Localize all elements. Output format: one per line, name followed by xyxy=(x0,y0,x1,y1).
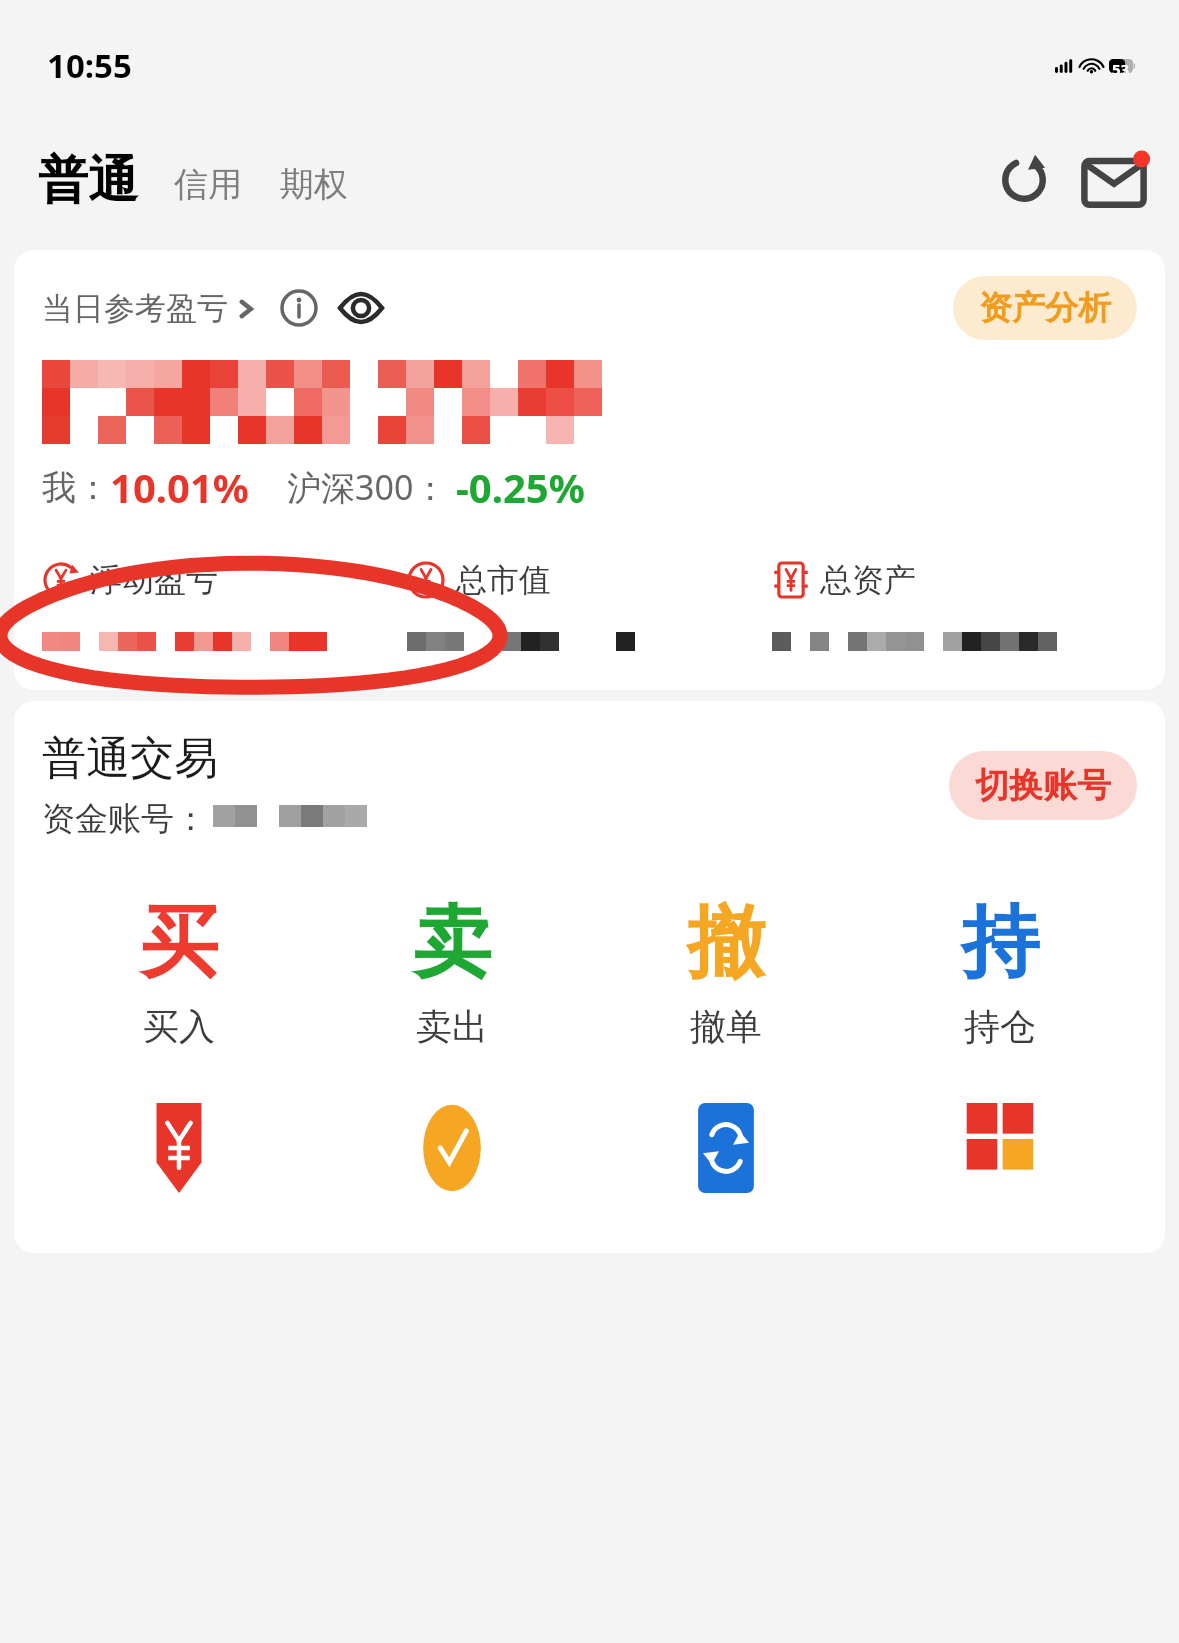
staticText: 卖出 xyxy=(416,1004,488,1049)
button[interactable]: 切换账号 xyxy=(949,751,1137,820)
button[interactable]: 总市值 xyxy=(407,560,772,660)
button[interactable]: 撤 xyxy=(589,894,863,1049)
staticText: 普通 xyxy=(38,149,138,212)
button[interactable]: 普通 xyxy=(22,145,154,216)
button[interactable]: 买 xyxy=(42,894,315,1049)
staticText: 沪深300： xyxy=(287,464,448,510)
staticText: 总市值 xyxy=(455,560,551,600)
button[interactable]: Transfer xyxy=(589,1103,863,1213)
button[interactable]: Toggle visibility xyxy=(334,281,388,335)
staticText: 资产分析 xyxy=(979,287,1111,329)
staticText: 切换账号 xyxy=(975,764,1111,807)
button[interactable]: 浮动盈亏 xyxy=(42,560,407,660)
button[interactable]: Info xyxy=(274,283,324,333)
button[interactable]: 信用 xyxy=(164,153,252,216)
button[interactable]: Refresh xyxy=(993,149,1055,211)
staticText: 撤单 xyxy=(690,1004,762,1049)
staticText: 买入 xyxy=(143,1004,215,1049)
staticText: 10.01% xyxy=(110,460,249,514)
button[interactable]: 总资产 xyxy=(772,560,1137,660)
button[interactable]: Confirmed xyxy=(315,1103,589,1213)
button[interactable]: 持 xyxy=(863,894,1137,1049)
staticText: 卖 xyxy=(413,894,491,992)
staticText: 买 xyxy=(140,894,218,992)
staticText: 持仓 xyxy=(964,1004,1036,1049)
staticText: 撤 xyxy=(687,894,765,992)
staticText: 信用 xyxy=(174,163,242,206)
staticText: 期权 xyxy=(280,163,348,206)
button[interactable]: 当日参考盈亏 xyxy=(42,283,258,334)
button[interactable]: More functions xyxy=(863,1103,1137,1213)
staticText: 总资产 xyxy=(820,560,916,600)
staticText: -0.25% xyxy=(456,460,585,514)
staticText: 持 xyxy=(961,894,1039,992)
staticText: 我： xyxy=(42,466,110,509)
staticText: 资金账号： xyxy=(42,798,207,840)
button[interactable]: 资产分析 xyxy=(953,276,1137,340)
button[interactable]: 期权 xyxy=(270,153,358,216)
staticText: 10:55 xyxy=(47,43,132,88)
button[interactable]: Messages xyxy=(1077,143,1151,217)
button[interactable]: 卖 xyxy=(315,894,589,1049)
staticText: 浮动盈亏 xyxy=(90,560,218,600)
button[interactable]: New share subscription xyxy=(42,1103,315,1213)
staticText: 53 xyxy=(1112,59,1130,73)
staticText: 当日参考盈亏 xyxy=(42,289,228,328)
staticText: 普通交易 xyxy=(42,731,218,786)
